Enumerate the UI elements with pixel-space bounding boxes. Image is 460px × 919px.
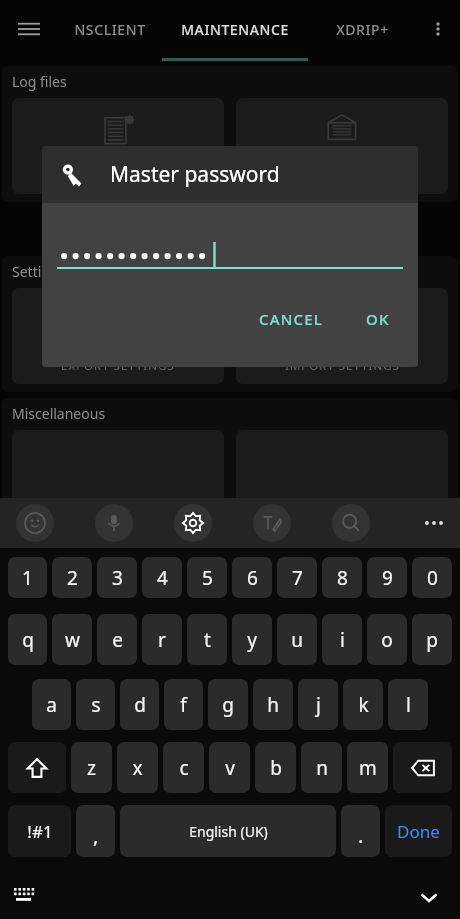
staticText: CANCEL [259, 309, 324, 329]
button[interactable]: IMPORT SETTINGS [236, 288, 448, 384]
button[interactable] [236, 98, 448, 194]
staticText: v [225, 755, 235, 781]
button[interactable]: f [164, 679, 203, 730]
staticText: h [267, 692, 279, 718]
staticText: r [158, 627, 166, 653]
button[interactable]: NSCLIENT [58, 0, 161, 58]
staticText: u [291, 627, 303, 653]
button[interactable]: , [76, 805, 115, 857]
button[interactable] [236, 430, 448, 526]
button[interactable]: Backspace [393, 742, 452, 793]
staticText: l [406, 692, 411, 718]
button[interactable]: u [277, 614, 317, 665]
staticText: 5 [202, 565, 213, 591]
staticText: y [247, 627, 257, 653]
staticText: 6 [247, 565, 258, 591]
staticText: 1 [22, 565, 33, 591]
button[interactable]: Done [385, 805, 452, 857]
button[interactable]: 4 [142, 557, 182, 598]
staticText: k [358, 692, 369, 718]
button[interactable]: 9 [367, 557, 407, 598]
button[interactable]: Shift [8, 742, 66, 793]
button[interactable]: More [414, 503, 454, 543]
button[interactable]: w [52, 614, 92, 665]
button[interactable]: 3 [97, 557, 137, 598]
staticText: d [134, 692, 146, 718]
button[interactable]: x [117, 742, 158, 793]
button[interactable] [12, 98, 224, 194]
button[interactable]: Hide keyboard [412, 880, 446, 914]
button[interactable]: a [32, 679, 71, 730]
button[interactable]: z [71, 742, 112, 793]
button[interactable]: i [322, 614, 362, 665]
button[interactable]: 0 [412, 557, 452, 598]
button[interactable]: 6 [232, 557, 272, 598]
button[interactable]: r [142, 614, 182, 665]
button[interactable]: More options [416, 0, 460, 58]
button[interactable]: l [388, 679, 428, 730]
button[interactable]: 5 [187, 557, 227, 598]
staticText: o [381, 627, 393, 653]
staticText: j [316, 692, 321, 718]
staticText: 3 [112, 565, 123, 591]
button[interactable]: CANCEL [251, 301, 332, 337]
staticText: n [316, 755, 328, 781]
staticText: t [204, 627, 211, 653]
button[interactable]: 1 [8, 557, 47, 598]
staticText: e [112, 627, 123, 653]
button[interactable]: n [301, 742, 342, 793]
button[interactable]: b [255, 742, 296, 793]
button[interactable]: English (UK) [120, 805, 336, 857]
staticText: 9 [382, 565, 393, 591]
button[interactable]: EXPORT SETTINGS [12, 288, 224, 384]
button[interactable]: q [8, 614, 47, 665]
button[interactable]: 7 [277, 557, 317, 598]
button[interactable]: 2 [52, 557, 92, 598]
staticText: Done [397, 820, 440, 843]
button[interactable]: c [163, 742, 204, 793]
staticText: f [180, 692, 187, 718]
staticText: m [359, 755, 377, 781]
button[interactable]: Keyboard settings [174, 504, 212, 542]
button[interactable]: !#1 [8, 805, 71, 857]
button[interactable]: e [97, 614, 137, 665]
button[interactable]: . [341, 805, 380, 857]
button[interactable] [12, 430, 224, 526]
staticText: 0 [427, 565, 438, 591]
button[interactable]: h [253, 679, 293, 730]
button[interactable]: Voice input [95, 504, 133, 542]
staticText: . [358, 822, 364, 849]
button[interactable]: Change keyboard [14, 882, 44, 912]
button[interactable]: v [209, 742, 250, 793]
button[interactable]: j [298, 679, 338, 730]
staticText: i [340, 627, 345, 653]
staticText: g [222, 692, 234, 718]
staticText: z [87, 755, 96, 781]
button[interactable]: y [232, 614, 272, 665]
staticText: b [270, 755, 282, 781]
button[interactable]: OK [358, 301, 398, 337]
button[interactable]: s [76, 679, 115, 730]
button[interactable]: o [367, 614, 407, 665]
button[interactable]: Handwriting [253, 504, 291, 542]
button[interactable]: Open navigation menu [0, 0, 58, 58]
button[interactable]: g [208, 679, 248, 730]
button[interactable]: m [347, 742, 388, 793]
button[interactable]: 8 [322, 557, 362, 598]
button[interactable]: Search [332, 504, 370, 542]
button[interactable]: p [412, 614, 452, 665]
button[interactable]: t [187, 614, 227, 665]
button[interactable]: MAINTENANCE [161, 0, 309, 58]
staticText: 2 [67, 565, 78, 591]
staticText: EXPORT SETTINGS [61, 358, 175, 374]
staticText: XDRIP+ [336, 20, 389, 39]
staticText: s [91, 692, 101, 718]
staticText: x [132, 755, 143, 781]
staticText: 4 [157, 565, 168, 591]
staticText: IMPORT SETTINGS [285, 358, 400, 374]
button[interactable]: Emoji [16, 504, 54, 542]
button[interactable]: XDRIP+ [309, 0, 416, 58]
staticText: Log files [12, 72, 67, 91]
button[interactable]: d [120, 679, 159, 730]
button[interactable]: k [343, 679, 383, 730]
